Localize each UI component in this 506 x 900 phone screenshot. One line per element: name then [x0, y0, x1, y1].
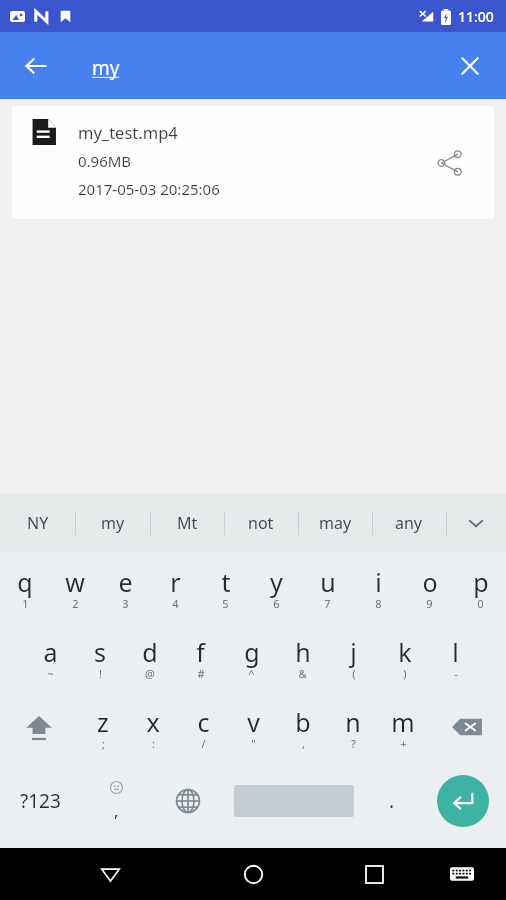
staticText: ,	[114, 799, 119, 822]
button[interactable]: Mt	[150, 493, 224, 552]
button[interactable]: o	[404, 552, 455, 622]
button[interactable]: n	[328, 692, 378, 762]
staticText: l	[452, 635, 459, 669]
button[interactable]: p	[455, 552, 506, 622]
button[interactable]: t	[200, 552, 251, 622]
staticText: 0	[477, 596, 484, 611]
staticText: 6	[273, 596, 280, 611]
button[interactable]: Back	[12, 42, 60, 90]
staticText: u	[320, 565, 336, 599]
staticText: k	[398, 635, 412, 669]
button[interactable]: y	[251, 552, 302, 622]
button[interactable]: c	[178, 692, 228, 762]
staticText: 1	[22, 596, 29, 611]
button[interactable]: Recent apps	[352, 852, 396, 896]
staticText: z	[97, 705, 109, 739]
button[interactable]: e	[100, 552, 150, 622]
staticText: any	[395, 512, 423, 534]
staticText: i	[375, 565, 382, 599]
staticText: c	[197, 705, 210, 739]
button[interactable]: v	[228, 692, 278, 762]
button[interactable]: m	[378, 692, 428, 762]
button[interactable]: d	[125, 622, 175, 692]
staticText: Mt	[177, 512, 198, 534]
button[interactable]: r	[150, 552, 200, 622]
staticText: b	[295, 705, 311, 739]
button[interactable]: .	[364, 762, 420, 840]
staticText: &	[298, 666, 307, 681]
staticText: a	[43, 635, 58, 669]
button[interactable]: my_test.mp4	[12, 106, 494, 219]
button[interactable]: my	[75, 493, 150, 552]
button[interactable]: w	[50, 552, 100, 622]
staticText: f	[196, 635, 205, 669]
staticText: (	[352, 666, 356, 681]
staticText: e	[118, 565, 133, 599]
button[interactable]: ?123	[0, 762, 80, 840]
button[interactable]: Emoji and comma	[80, 762, 152, 840]
staticText: t	[221, 565, 231, 599]
staticText: 3	[122, 596, 129, 611]
button[interactable]: Backspace	[428, 692, 506, 762]
staticText: r	[170, 565, 181, 599]
staticText: ~	[47, 666, 54, 681]
staticText: my_test.mp4	[78, 121, 178, 143]
staticText: v	[247, 705, 260, 739]
staticText: d	[142, 635, 158, 669]
staticText: p	[473, 565, 489, 599]
button[interactable]: x	[128, 692, 178, 762]
button[interactable]: Change keyboard language	[152, 762, 224, 840]
button[interactable]: Switch keyboard	[440, 852, 484, 896]
button[interactable]: Clear search	[446, 42, 494, 90]
staticText: #	[197, 666, 205, 681]
staticText: my	[101, 512, 125, 534]
staticText: 8	[375, 596, 382, 611]
button[interactable]: j	[328, 622, 379, 692]
button[interactable]: not	[224, 493, 298, 552]
button[interactable]: any	[372, 493, 446, 552]
staticText: not	[248, 512, 274, 534]
staticText: ?	[351, 736, 356, 751]
button[interactable]: Share	[428, 141, 472, 185]
staticText: w	[65, 565, 85, 599]
staticText: :	[152, 736, 155, 751]
staticText: h	[295, 635, 311, 669]
button[interactable]: a	[25, 622, 75, 692]
button[interactable]: NY	[0, 493, 75, 552]
staticText: j	[350, 635, 357, 669]
button[interactable]: l	[430, 622, 481, 692]
staticText: -	[454, 666, 458, 681]
staticText: q	[17, 565, 33, 599]
button[interactable]: g	[226, 622, 277, 692]
staticText: 4	[172, 596, 179, 611]
button[interactable]: More suggestions	[446, 493, 506, 552]
staticText: 2	[72, 596, 79, 611]
button[interactable]: h	[277, 622, 328, 692]
staticText: "	[251, 736, 256, 751]
staticText: s	[94, 635, 106, 669]
staticText: 5	[222, 596, 229, 611]
staticText: ?123	[20, 788, 61, 814]
button[interactable]: Home	[231, 852, 275, 896]
button[interactable]: u	[302, 552, 353, 622]
staticText: @	[145, 666, 155, 681]
button[interactable]: may	[298, 493, 372, 552]
button[interactable]: k	[379, 622, 430, 692]
staticText: my	[92, 55, 120, 81]
button[interactable]: s	[75, 622, 125, 692]
staticText: +	[400, 736, 407, 751]
button[interactable]: z	[78, 692, 128, 762]
button[interactable]: Shift	[0, 692, 78, 762]
staticText: /	[201, 736, 206, 751]
button[interactable]: f	[175, 622, 226, 692]
button[interactable]: Enter	[420, 762, 506, 840]
button[interactable]: Space	[224, 762, 364, 840]
staticText: ^	[248, 666, 255, 681]
staticText: m	[391, 705, 415, 739]
staticText: o	[422, 565, 438, 599]
button[interactable]: q	[0, 552, 50, 622]
staticText: y	[270, 565, 283, 599]
button[interactable]: Back	[88, 852, 132, 896]
button[interactable]: i	[353, 552, 404, 622]
button[interactable]: b	[278, 692, 328, 762]
